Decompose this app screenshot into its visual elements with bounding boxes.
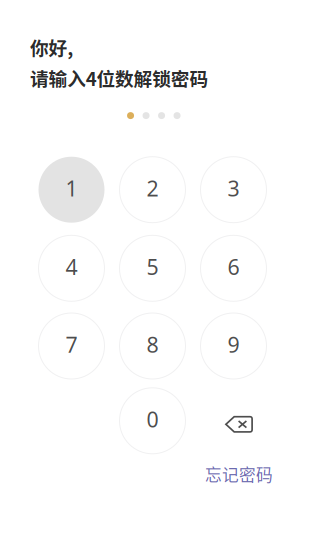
- staticText: 3: [227, 174, 239, 203]
- staticText: 2: [146, 174, 158, 203]
- button[interactable]: 9: [200, 313, 266, 379]
- button[interactable]: 7: [38, 313, 104, 379]
- button[interactable]: 8: [119, 313, 185, 379]
- button[interactable]: 3: [200, 157, 266, 223]
- button[interactable]: 2: [119, 157, 185, 223]
- staticText: 0: [146, 405, 158, 434]
- button[interactable]: 4: [38, 235, 104, 301]
- staticText: 忘记密码: [205, 462, 273, 486]
- staticText: 9: [227, 330, 239, 359]
- button[interactable]: Delete: [206, 391, 272, 457]
- staticText: 4: [65, 252, 77, 281]
- staticText: 7: [65, 330, 77, 359]
- button[interactable]: 6: [200, 235, 266, 301]
- staticText: 8: [146, 330, 158, 359]
- button[interactable]: 5: [119, 235, 185, 301]
- button[interactable]: 1: [38, 157, 104, 223]
- button[interactable]: 0: [119, 388, 185, 454]
- staticText: 请输入4位数解锁密码: [30, 64, 208, 91]
- staticText: 6: [227, 252, 239, 281]
- staticText: 你好,: [30, 34, 73, 61]
- staticText: 5: [146, 252, 158, 281]
- button[interactable]: 忘记密码: [199, 456, 279, 492]
- staticText: 1: [65, 174, 77, 203]
